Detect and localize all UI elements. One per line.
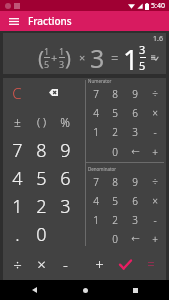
button[interactable]: ± <box>5 107 29 136</box>
staticText: 7 <box>93 87 99 101</box>
button[interactable]: × <box>145 103 165 122</box>
button[interactable]: 8 <box>105 172 125 191</box>
staticText: 5:40 <box>151 1 165 11</box>
staticText: 1 <box>93 213 99 227</box>
staticText: + <box>51 50 58 65</box>
button[interactable]: 0 <box>29 220 53 248</box>
staticText: 6 <box>132 106 138 120</box>
staticText: 2 <box>36 194 47 219</box>
staticText: C <box>12 83 22 103</box>
button[interactable]: 7 <box>5 136 29 164</box>
button[interactable]: Recents <box>127 282 143 298</box>
staticText: ( <box>38 44 44 71</box>
button[interactable]: 6 <box>125 191 145 210</box>
staticText: 0 <box>112 145 118 159</box>
button[interactable]: 3 <box>125 210 145 229</box>
button[interactable]: C <box>5 78 29 107</box>
staticText: ) <box>65 44 71 71</box>
button[interactable]: ÷ <box>5 248 29 280</box>
staticText: 3 <box>132 213 138 227</box>
button[interactable]: Home <box>77 282 93 298</box>
button[interactable]: 5 <box>105 191 125 210</box>
button[interactable]: 2 <box>29 192 53 220</box>
staticText: + <box>95 254 104 274</box>
staticText: ± <box>14 114 21 130</box>
staticText: ÷ <box>152 87 158 101</box>
button[interactable]: - <box>53 248 77 280</box>
button[interactable]: + <box>145 142 165 162</box>
staticText: - <box>63 254 68 274</box>
button[interactable]: 6 <box>53 164 77 192</box>
staticText: Fractions <box>28 14 72 28</box>
staticText: ÷ <box>13 254 22 274</box>
button[interactable]: . <box>5 220 29 248</box>
staticText: 5 <box>112 106 118 120</box>
button[interactable]: ← <box>125 142 145 162</box>
staticText: 3 <box>59 58 65 70</box>
button[interactable]: Backspace <box>29 78 77 107</box>
button[interactable]: 9 <box>53 136 77 164</box>
button[interactable]: Toggle decimal <box>150 53 158 63</box>
button[interactable]: 5 <box>29 164 53 192</box>
button[interactable]: 3 <box>53 192 77 220</box>
staticText: ( ) <box>37 114 46 129</box>
button[interactable]: + <box>145 229 165 248</box>
button[interactable]: Back <box>26 282 42 298</box>
button[interactable]: × <box>145 191 165 210</box>
staticText: 4 <box>93 106 99 120</box>
staticText: = <box>111 49 119 67</box>
staticText: Numerator <box>88 78 112 84</box>
staticText: 5 <box>139 58 146 73</box>
staticText: 3 <box>132 125 138 139</box>
staticText: 7 <box>93 175 99 189</box>
staticText: ← <box>131 146 140 158</box>
button[interactable]: - <box>145 210 165 229</box>
staticText: 7 <box>12 138 23 163</box>
button[interactable]: 6 <box>125 103 145 122</box>
staticText: 1 <box>44 45 50 57</box>
staticText: 1 <box>123 41 139 74</box>
button[interactable]: ( ) <box>29 107 53 136</box>
button[interactable]: 1 <box>86 210 105 229</box>
staticText: ← <box>131 233 140 245</box>
staticText: 2 <box>112 125 118 139</box>
button[interactable]: 3 <box>125 122 145 142</box>
button[interactable]: 8 <box>29 136 53 164</box>
button[interactable]: 2 <box>105 122 125 142</box>
button[interactable]: Menu <box>0 11 28 31</box>
button[interactable]: 2 <box>105 210 125 229</box>
button[interactable]: ÷ <box>145 172 165 191</box>
staticText: 4 <box>12 166 23 191</box>
button[interactable]: - <box>145 122 165 142</box>
button[interactable]: Confirm <box>112 248 138 280</box>
button[interactable]: % <box>53 107 77 136</box>
button[interactable]: 1 <box>86 122 105 142</box>
button[interactable]: ÷ <box>145 84 165 103</box>
staticText: + <box>152 232 158 246</box>
button[interactable]: 7 <box>86 84 105 103</box>
button[interactable]: 0 <box>105 229 125 248</box>
button[interactable]: ← <box>125 229 145 248</box>
staticText: 9 <box>60 138 71 163</box>
button[interactable]: × <box>29 248 53 280</box>
button[interactable]: 9 <box>125 84 145 103</box>
staticText: 3 <box>139 42 146 57</box>
staticText: × <box>37 254 46 274</box>
button[interactable]: 5 <box>105 103 125 122</box>
staticText: + <box>152 145 158 159</box>
button[interactable]: 4 <box>5 164 29 192</box>
button[interactable]: = <box>138 248 164 280</box>
staticText: 1.6 <box>153 34 163 44</box>
button[interactable]: 4 <box>86 103 105 122</box>
button[interactable]: 0 <box>105 142 125 162</box>
button[interactable]: 7 <box>86 172 105 191</box>
button[interactable]: 8 <box>105 84 125 103</box>
button[interactable]: 1 <box>5 192 29 220</box>
button[interactable]: 9 <box>125 172 145 191</box>
button[interactable]: + <box>86 248 112 280</box>
button[interactable]: 4 <box>86 191 105 210</box>
staticText: 3 <box>60 194 71 219</box>
staticText: 8 <box>36 138 47 163</box>
